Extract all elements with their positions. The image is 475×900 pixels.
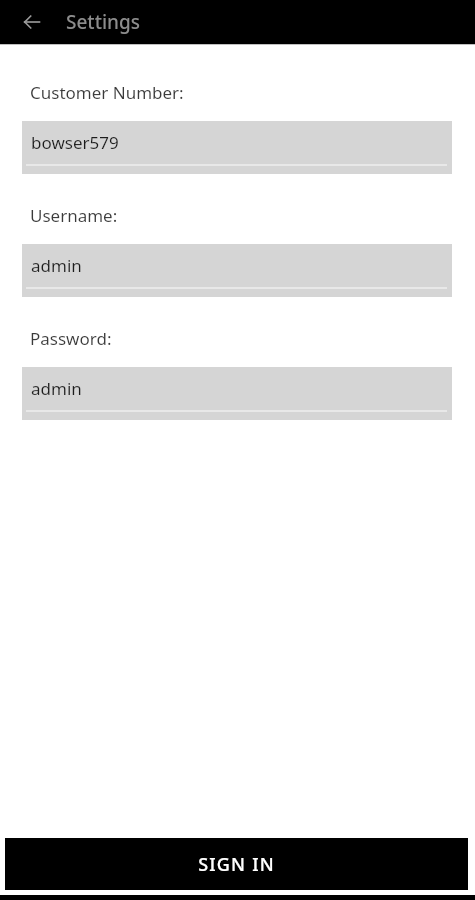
staticText: SIGN IN	[198, 852, 275, 877]
staticText: admin	[31, 377, 82, 400]
staticText: Username:	[30, 204, 118, 227]
staticText: Password:	[30, 327, 112, 350]
button[interactable]: admin	[22, 367, 452, 420]
button[interactable]: admin	[22, 244, 452, 297]
staticText: Settings	[66, 9, 140, 35]
staticText: Customer Number:	[30, 81, 184, 104]
staticText: admin	[31, 254, 82, 277]
button[interactable]: SIGN IN	[5, 838, 468, 890]
button[interactable]: Back	[12, 2, 52, 42]
button[interactable]: bowser579	[22, 121, 452, 174]
staticText: bowser579	[31, 131, 119, 154]
